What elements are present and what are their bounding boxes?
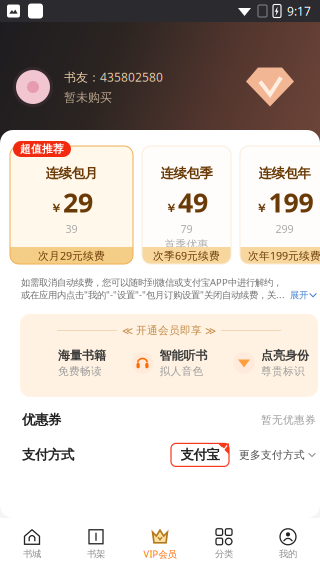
staticText: 超值推荐 [20,142,64,155]
staticText: 39 [65,222,77,236]
staticText: 次月29元续费 [38,248,105,263]
button[interactable]: 连续包季 [142,146,231,264]
staticText: 免费畅读 [58,365,102,378]
button[interactable]: 我的 [256,520,320,567]
button[interactable]: 更多支付方式 [229,448,316,461]
staticText: 展开 [290,289,308,301]
staticText: VIP会员 [143,548,176,560]
button[interactable]: 书架 [64,520,128,567]
staticText: 智能听书 [159,348,207,363]
staticText: 9:17 [287,3,311,19]
staticText: 点亮身份 [261,348,309,363]
staticText: 49 [178,184,208,220]
staticText: 连续包月 [45,165,97,181]
staticText: 暂无优惠券 [261,413,316,426]
staticText: 拟人音色 [159,365,203,378]
staticText: 如需取消自动续费，您可以随时到微信或支付宝APP中进行解约，或在应用内点击"我的… [21,276,288,301]
button[interactable]: 书城 [0,520,64,567]
staticText: 尊贵标识 [261,365,305,378]
staticText: 连续包年 [258,165,310,181]
button[interactable]: 分类 [192,520,256,567]
staticText: 连续包季 [160,165,212,181]
button[interactable]: 连续包月 [10,146,133,264]
staticText: 首季优惠 [164,238,208,251]
staticText: 199 [268,184,313,220]
staticText: 支付宝 [180,447,219,463]
staticText: ≪ 开通会员即享 ≫ [122,324,216,337]
staticText: ￥ [255,201,267,216]
staticText: 次季69元续费 [153,248,220,263]
staticText: 书架 [87,548,105,560]
button[interactable]: 支付宝 [171,443,229,466]
staticText: 海量书籍 [58,348,106,363]
button[interactable]: VIP会员 [128,520,192,567]
staticText: 更多支付方式 [239,448,305,461]
staticText: 支付方式 [22,447,74,463]
staticText: 书友：435802580 [64,69,163,85]
staticText: 次年199元续费 [248,248,320,263]
staticText: 暂未购买 [64,90,112,105]
button[interactable]: 连续包年 [240,146,320,264]
staticText: ￥ [165,201,177,216]
button[interactable]: 展开 [288,289,317,301]
staticText: 分类 [215,548,233,560]
staticText: 我的 [279,548,297,560]
staticText: 29 [63,184,93,220]
staticText: 优惠券 [22,412,61,428]
staticText: ￥ [50,201,62,216]
staticText: 79 [180,222,192,236]
staticText: 299 [275,222,293,236]
staticText: 书城 [23,548,41,560]
